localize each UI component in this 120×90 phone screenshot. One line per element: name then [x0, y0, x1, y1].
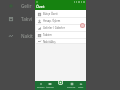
button[interactable]: Takvi — [9, 16, 33, 21]
staticText: Gelirler / Giderler — [43, 26, 65, 30]
staticText: Hesap / İşlem — [43, 19, 61, 23]
staticText: Raporlar — [67, 86, 76, 89]
staticText: İşlemler — [46, 86, 54, 89]
staticText: Bütçe Özeti — [43, 12, 58, 16]
button[interactable]: Nakit Akış — [36, 39, 86, 44]
staticText: Takvim — [43, 33, 52, 37]
button[interactable]: Ekle — [58, 80, 63, 85]
button[interactable]: Bütçe Özeti — [36, 11, 86, 18]
staticText: Diğer — [78, 86, 84, 89]
staticText: Gelir — [21, 3, 32, 8]
button[interactable]: Diğer — [76, 83, 85, 89]
button[interactable]: İşlemler — [45, 83, 54, 89]
staticText: Bütçem — [37, 86, 45, 89]
staticText: Özet — [36, 4, 45, 9]
staticText: Nakit — [21, 33, 33, 38]
staticText: Takvi — [21, 16, 33, 21]
button[interactable]: Raporlar — [67, 83, 76, 89]
staticText: Nakit Akış — [43, 40, 56, 44]
button[interactable]: Bütçem — [36, 83, 45, 89]
button[interactable]: Gelir — [9, 3, 32, 8]
button[interactable]: Hesap / İşlem — [36, 18, 86, 25]
button[interactable]: Gelirler / Giderler — [36, 25, 86, 32]
button[interactable]: Nakit — [9, 33, 33, 38]
button[interactable]: Takvim — [36, 32, 86, 39]
